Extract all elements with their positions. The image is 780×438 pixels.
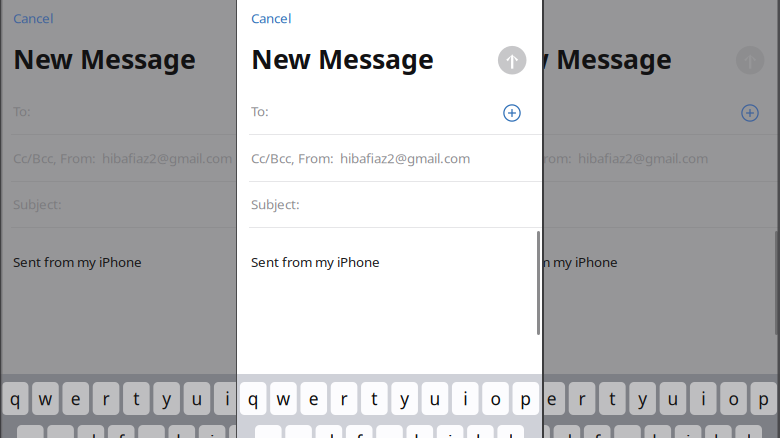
button[interactable]: f [108, 425, 134, 438]
button[interactable]: s [285, 425, 312, 438]
button[interactable]: j [675, 425, 701, 438]
button[interactable]: a [17, 425, 44, 438]
button[interactable]: Cancel [0, 6, 65, 30]
staticText: p [758, 387, 769, 410]
button[interactable]: Subject: [475, 181, 780, 227]
button[interactable]: r [93, 382, 119, 415]
staticText: Subject: [251, 195, 300, 213]
button[interactable]: l [259, 425, 286, 438]
staticText: o [253, 387, 263, 410]
button[interactable]: q [478, 382, 504, 415]
button[interactable]: s [47, 425, 74, 438]
button[interactable]: Subject: [237, 181, 542, 227]
button[interactable]: Cc/Bcc, From: [0, 135, 304, 181]
button[interactable]: i [452, 382, 479, 415]
button[interactable]: j [437, 425, 463, 438]
staticText: a [501, 430, 511, 438]
button[interactable]: Cc/Bcc, From: [475, 135, 780, 181]
button[interactable]: l [735, 425, 762, 438]
button[interactable]: e [300, 382, 327, 415]
staticText: Sent from my iPhone [13, 253, 142, 271]
staticText: k [476, 430, 485, 438]
button[interactable]: e [62, 382, 89, 415]
button[interactable]: i [214, 382, 241, 415]
button[interactable]: k [705, 425, 732, 438]
button[interactable]: f [584, 425, 610, 438]
button[interactable]: o [244, 382, 271, 415]
button[interactable]: k [229, 425, 256, 438]
button[interactable]: g [614, 425, 641, 438]
staticText: q [10, 387, 21, 410]
button[interactable]: Send [256, 42, 292, 78]
button[interactable]: y [153, 382, 180, 415]
button[interactable]: u [184, 382, 210, 415]
button[interactable]: t [599, 382, 626, 415]
button[interactable]: s [523, 425, 550, 438]
button[interactable]: Cc/Bcc, From: [237, 135, 542, 181]
button[interactable]: y [391, 382, 418, 415]
staticText: l [509, 430, 513, 438]
button[interactable]: To: [0, 88, 304, 134]
button[interactable]: w [270, 382, 297, 415]
button[interactable]: h [644, 425, 671, 438]
button[interactable]: g [376, 425, 403, 438]
button[interactable]: f [346, 425, 372, 438]
button[interactable]: Add contact [259, 98, 289, 128]
button[interactable]: j [199, 425, 225, 438]
button[interactable]: a [493, 425, 520, 438]
button[interactable]: p [275, 382, 301, 415]
button[interactable]: u [422, 382, 448, 415]
button[interactable]: g [138, 425, 165, 438]
button[interactable]: w [508, 382, 535, 415]
button[interactable]: h [168, 425, 195, 438]
button[interactable]: Add contact [497, 98, 527, 128]
staticText: r [102, 387, 109, 410]
button[interactable]: w [32, 382, 59, 415]
staticText: f [356, 430, 362, 438]
button[interactable]: To: [475, 88, 780, 134]
button[interactable]: u [660, 382, 686, 415]
button[interactable]: h [406, 425, 433, 438]
button[interactable]: l [497, 425, 524, 438]
button[interactable]: Send [494, 42, 530, 78]
button[interactable]: d [78, 425, 104, 438]
staticText: d [323, 430, 334, 438]
staticText: i [463, 387, 467, 410]
button[interactable]: Cancel [237, 6, 303, 30]
button[interactable]: p [751, 382, 777, 415]
button[interactable]: d [316, 425, 342, 438]
button[interactable]: e [538, 382, 565, 415]
button[interactable]: r [331, 382, 357, 415]
staticText: y [400, 387, 409, 410]
staticText: d [85, 430, 96, 438]
button[interactable]: Add contact [735, 98, 765, 128]
button[interactable]: t [123, 382, 150, 415]
staticText: Cc/Bcc, From: [489, 149, 572, 167]
button[interactable]: y [629, 382, 656, 415]
button[interactable]: o [720, 382, 747, 415]
button[interactable]: r [569, 382, 595, 415]
staticText: e [71, 387, 81, 410]
staticText: w [276, 387, 290, 410]
button[interactable]: o [482, 382, 509, 415]
button[interactable]: t [361, 382, 388, 415]
button[interactable]: k [467, 425, 494, 438]
button[interactable]: a [255, 425, 282, 438]
staticText: Subject: [13, 195, 62, 213]
staticText: f [594, 430, 600, 438]
button[interactable]: d [554, 425, 580, 438]
staticText: t [371, 387, 377, 410]
staticText: Cancel [251, 9, 291, 27]
button[interactable]: q [240, 382, 266, 415]
button[interactable]: p [513, 382, 539, 415]
button[interactable]: i [690, 382, 717, 415]
button[interactable]: q [2, 382, 28, 415]
button[interactable]: Send [732, 42, 768, 78]
button[interactable]: Subject: [0, 181, 304, 227]
staticText: t [609, 387, 615, 410]
button[interactable]: To: [237, 88, 542, 134]
staticText: q [486, 387, 497, 410]
